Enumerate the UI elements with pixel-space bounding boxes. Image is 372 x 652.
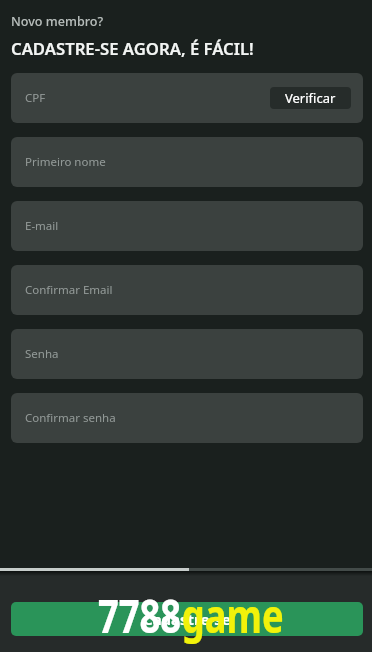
staticText: 7788 — [98, 584, 182, 647]
staticText: Cadastre-se — [143, 609, 231, 629]
staticText: Confirmar senha — [25, 410, 116, 426]
staticText: CPF — [25, 90, 46, 106]
button[interactable]: Cadastre-se — [11, 602, 363, 636]
staticText: Novo membro? — [11, 13, 104, 30]
button[interactable]: Confirmar senha — [11, 393, 363, 443]
button[interactable]: CPF — [11, 73, 363, 123]
button[interactable]: Senha — [11, 329, 363, 379]
staticText: Confirmar Email — [25, 282, 113, 298]
staticText: Primeiro nome — [25, 154, 106, 170]
staticText: game — [182, 584, 284, 647]
staticText: E-mail — [25, 218, 59, 234]
staticText: CADASTRE-SE AGORA, É FÁCIL! — [11, 37, 254, 60]
button[interactable]: Primeiro nome — [11, 137, 363, 187]
button[interactable]: E-mail — [11, 201, 363, 251]
button[interactable]: Confirmar Email — [11, 265, 363, 315]
staticText: Verificar — [285, 89, 336, 107]
button[interactable]: Verificar — [270, 87, 351, 109]
staticText: Senha — [25, 346, 59, 362]
